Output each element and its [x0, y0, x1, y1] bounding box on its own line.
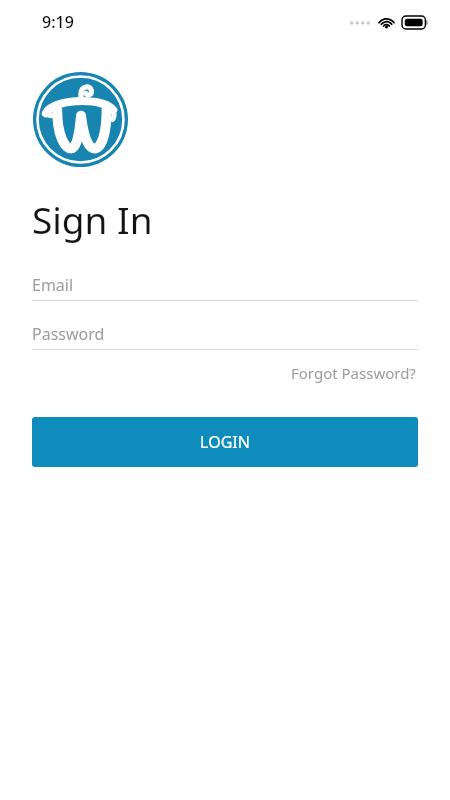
- staticText: LOGIN: [200, 431, 250, 453]
- staticText: Password: [32, 323, 105, 345]
- button[interactable]: Password: [32, 319, 418, 350]
- other: App logo: [33, 72, 128, 167]
- button[interactable]: LOGIN: [32, 417, 418, 467]
- button[interactable]: Email: [32, 270, 418, 301]
- staticText: Sign In: [32, 194, 153, 244]
- staticText: Forgot Password?: [291, 363, 416, 383]
- staticText: Email: [32, 274, 74, 296]
- staticText: 9:19: [42, 11, 74, 33]
- button[interactable]: Forgot Password?: [289, 359, 418, 387]
